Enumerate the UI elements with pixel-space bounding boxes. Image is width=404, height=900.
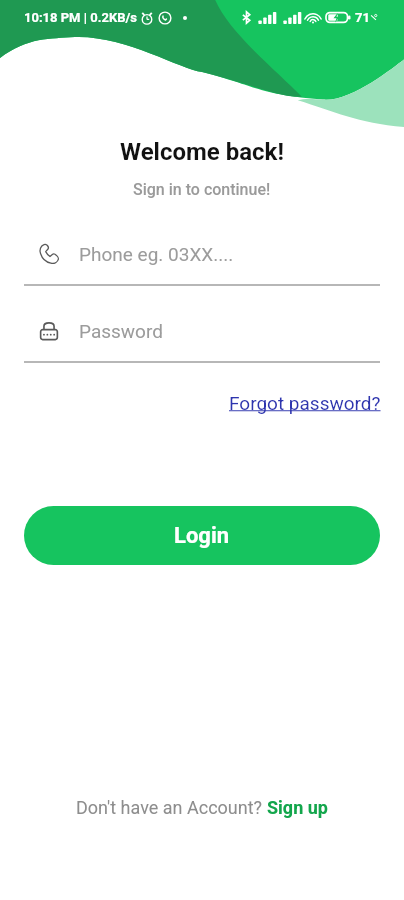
staticText: Forgot password?: [229, 392, 381, 414]
button[interactable]: Password: [38, 317, 380, 345]
other: Phone number: [38, 243, 60, 265]
button[interactable]: Login: [24, 506, 380, 565]
staticText: Sign up: [267, 797, 328, 818]
button[interactable]: Forgot password?: [229, 392, 381, 414]
staticText: Don't have an Account?: [76, 797, 267, 818]
staticText: 71: [355, 10, 370, 25]
staticText: Welcome back!: [120, 138, 284, 166]
staticText: Password: [79, 320, 163, 342]
button[interactable]: Don't have an Account?: [76, 797, 328, 818]
other: Password: [38, 320, 60, 342]
staticText: Login: [174, 523, 230, 549]
staticText: Phone eg. 03XX....: [79, 243, 234, 265]
staticText: Sign in to continue!: [133, 180, 271, 199]
button[interactable]: Phone number: [38, 240, 380, 268]
staticText: 10:18 PM | 0.2KB/s: [24, 10, 137, 25]
